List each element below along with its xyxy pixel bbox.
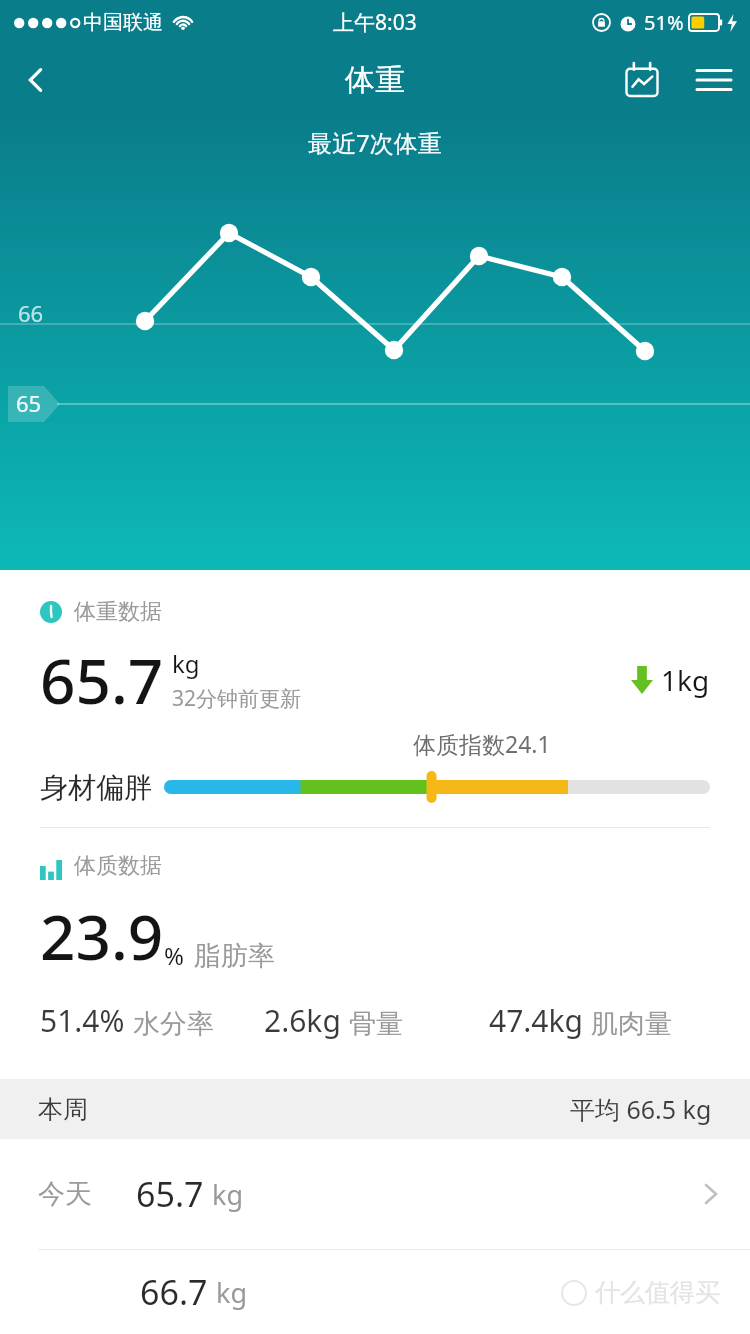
staticText: 51% (644, 9, 684, 36)
staticText: 水分率 (133, 1007, 214, 1041)
staticText: 47.4kg (489, 1000, 583, 1041)
staticText: 最近7次体重 (308, 126, 442, 159)
staticText: 上午8:03 (333, 8, 417, 37)
staticText: 32分钟前更新 (172, 684, 302, 713)
button[interactable]: 66.7 (0, 1250, 750, 1334)
staticText: kg (172, 647, 200, 680)
staticText: 体质数据 (74, 852, 162, 880)
staticText: 什么值得买 (595, 1277, 720, 1308)
staticText: kg (216, 1274, 248, 1311)
staticText: 体重数据 (74, 598, 162, 626)
staticText: 1kg (661, 661, 710, 699)
staticText: 身材偏胖 (40, 770, 152, 805)
staticText: 体重 (345, 61, 405, 99)
staticText: % (164, 939, 184, 972)
staticText: 65 (16, 388, 42, 418)
staticText: 平均 66.5 kg (570, 1092, 712, 1126)
staticText: 2.6kg (264, 1000, 341, 1041)
staticText: 中国联通 (83, 10, 163, 35)
staticText: 65.7 (136, 1171, 204, 1217)
staticText: kg (212, 1176, 244, 1213)
staticText: 23.9 (40, 894, 164, 978)
staticText: 肌肉量 (591, 1007, 672, 1041)
staticText: 65.7 (40, 638, 164, 722)
staticText: 66.7 (140, 1269, 208, 1315)
staticText: 体质指数24.1 (413, 728, 551, 759)
staticText: 本周 (38, 1094, 88, 1125)
staticText: 骨量 (349, 1007, 403, 1041)
staticText: 51.4% (40, 1000, 125, 1041)
button[interactable]: Menu (678, 44, 750, 116)
staticText: 今天 (38, 1177, 92, 1211)
button[interactable]: History chart (606, 44, 678, 116)
staticText: 66 (18, 298, 44, 328)
staticText: 脂肪率 (194, 939, 275, 973)
button[interactable]: Back (0, 44, 72, 116)
button[interactable]: 今天 (0, 1139, 750, 1249)
